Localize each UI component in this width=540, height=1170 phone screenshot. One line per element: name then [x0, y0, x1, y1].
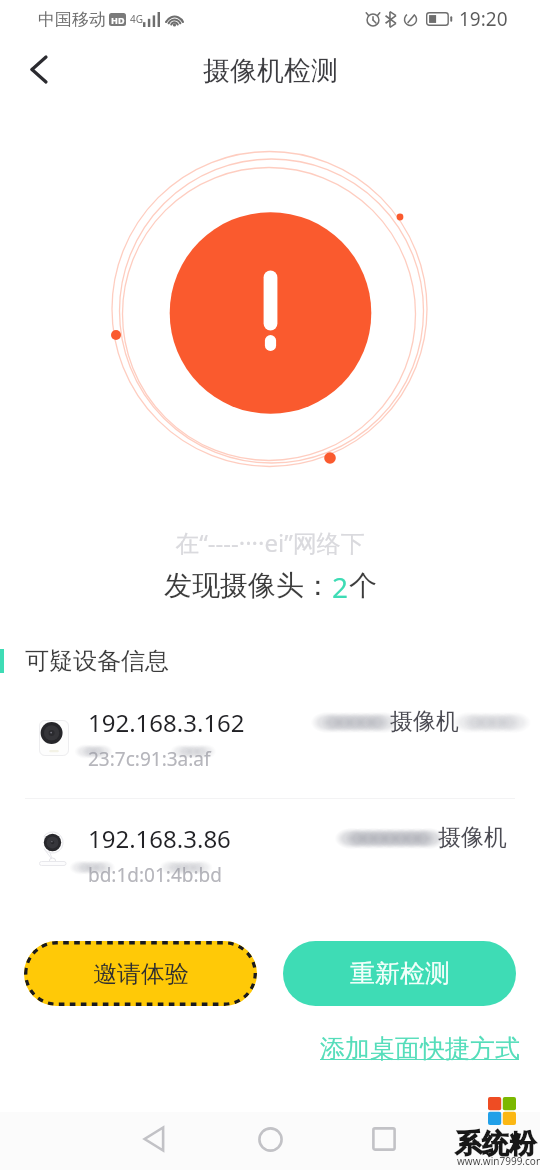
button[interactable]: Recents: [356, 1111, 412, 1167]
staticText: 个: [349, 568, 377, 603]
staticText: 发现摄像头：: [164, 568, 332, 603]
staticText: 19:20: [459, 6, 508, 32]
staticText: HD: [111, 14, 125, 26]
staticText: 可疑设备信息: [25, 646, 169, 676]
staticText: 添加桌面快捷方式: [320, 1033, 520, 1064]
button[interactable]: 192.168.3.86: [0, 806, 540, 906]
staticText: 192.168.3.162: [88, 706, 245, 739]
button[interactable]: 邀请体验: [24, 941, 257, 1006]
staticText: 2: [332, 568, 349, 606]
staticText: 摄像机: [438, 823, 507, 852]
staticText: 23:7c:91:3a:af: [88, 746, 211, 772]
staticText: 在“----····ei”网络下: [0, 526, 540, 559]
button[interactable]: Back: [4, 50, 74, 90]
staticText: 重新检测: [350, 958, 450, 989]
staticText: 中国移动: [38, 9, 106, 30]
staticText: 摄像机检测: [203, 54, 338, 88]
staticText: bd:1d:01:4b:bd: [88, 862, 222, 888]
button[interactable]: 添加桌面快捷方式: [320, 1033, 520, 1065]
staticText: 系统粉: [455, 1127, 536, 1161]
staticText: www.win7999.com: [457, 1154, 540, 1168]
staticText: 摄像机: [390, 707, 459, 736]
button[interactable]: 192.168.3.162: [0, 690, 540, 790]
button[interactable]: Back: [126, 1111, 182, 1167]
staticText: 192.168.3.86: [88, 822, 231, 855]
staticText: 邀请体验: [93, 959, 189, 989]
staticText: 4G: [130, 12, 143, 26]
button[interactable]: Home: [242, 1111, 298, 1167]
button[interactable]: 重新检测: [283, 941, 516, 1006]
